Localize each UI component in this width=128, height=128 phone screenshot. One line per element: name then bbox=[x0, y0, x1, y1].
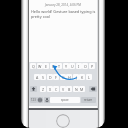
button[interactable]: Emoji bbox=[37, 97, 43, 103]
button[interactable]: D bbox=[47, 74, 53, 80]
staticText: K bbox=[81, 75, 84, 80]
staticText: X bbox=[49, 87, 52, 92]
button[interactable]: return bbox=[81, 97, 96, 103]
staticText: space bbox=[61, 98, 69, 102]
staticText: B bbox=[68, 87, 71, 92]
button[interactable]: X bbox=[47, 86, 53, 92]
staticText: T bbox=[58, 64, 60, 69]
staticText: 123 bbox=[31, 98, 36, 102]
button[interactable]: L bbox=[86, 74, 92, 80]
staticText: P bbox=[91, 64, 94, 69]
button[interactable]: A bbox=[34, 74, 40, 80]
staticText: N bbox=[75, 87, 78, 92]
staticText: S bbox=[42, 75, 44, 80]
staticText: C bbox=[55, 87, 58, 92]
button[interactable]: Shift bbox=[30, 86, 37, 92]
staticText: Q bbox=[32, 64, 35, 69]
staticText: J bbox=[76, 75, 77, 80]
staticText: R bbox=[52, 64, 55, 69]
staticText: W bbox=[38, 64, 42, 69]
staticText: F bbox=[55, 75, 57, 80]
staticText: Z bbox=[42, 87, 45, 92]
button[interactable]: M bbox=[79, 86, 85, 92]
staticText: January 28, 2014, 4:06 PM bbox=[29, 3, 97, 7]
button[interactable]: Q bbox=[30, 63, 36, 69]
staticText: Hello world! Gesture based typing is bbox=[31, 9, 96, 14]
button[interactable]: S bbox=[40, 74, 46, 80]
button[interactable]: H bbox=[66, 74, 72, 80]
button[interactable]: E bbox=[43, 63, 49, 69]
button[interactable]: R bbox=[50, 63, 56, 69]
button[interactable]: N bbox=[73, 86, 79, 92]
button[interactable]: W bbox=[37, 63, 43, 69]
button[interactable]: I bbox=[76, 63, 82, 69]
staticText: E bbox=[45, 64, 47, 69]
staticText: D bbox=[49, 75, 52, 80]
button[interactable]: V bbox=[60, 86, 66, 92]
staticText: I bbox=[78, 64, 80, 69]
button[interactable]: Home bbox=[56, 114, 70, 128]
button[interactable]: 123 bbox=[30, 97, 37, 103]
staticText: Y bbox=[65, 64, 68, 69]
button[interactable]: J bbox=[73, 74, 79, 80]
button[interactable]: C bbox=[53, 86, 59, 92]
button[interactable]: U bbox=[69, 63, 75, 69]
button[interactable]: G bbox=[60, 74, 66, 80]
staticText: pretty cool bbox=[31, 14, 51, 19]
button[interactable]: T bbox=[56, 63, 62, 69]
button[interactable]: F bbox=[53, 74, 59, 80]
staticText: L bbox=[88, 75, 90, 80]
staticText: U bbox=[71, 64, 74, 69]
staticText: O bbox=[84, 64, 87, 69]
button[interactable]: P bbox=[89, 63, 95, 69]
staticText: H bbox=[68, 75, 71, 80]
button[interactable]: K bbox=[79, 74, 85, 80]
staticText: M bbox=[80, 87, 84, 92]
button[interactable]: Z bbox=[40, 86, 46, 92]
staticText: A bbox=[36, 75, 39, 80]
button[interactable]: B bbox=[66, 86, 72, 92]
staticText: return bbox=[84, 98, 93, 102]
staticText: V bbox=[62, 87, 65, 92]
button[interactable]: Backspace bbox=[89, 86, 97, 92]
button[interactable]: space bbox=[50, 97, 80, 103]
button[interactable]: Y bbox=[63, 63, 69, 69]
staticText: G bbox=[62, 75, 65, 80]
button[interactable]: Dictation bbox=[44, 97, 50, 103]
button[interactable]: O bbox=[82, 63, 88, 69]
